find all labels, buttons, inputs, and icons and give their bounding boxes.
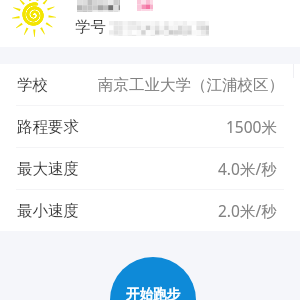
other: App logo	[12, 0, 56, 37]
button[interactable]: 最小速度	[0, 190, 300, 231]
staticText: 1500米	[226, 116, 277, 137]
button[interactable]: 学校	[0, 64, 300, 105]
staticText: 最大速度	[17, 159, 79, 179]
staticText: 4.0米/秒	[218, 158, 277, 179]
staticText: 学校	[17, 75, 48, 95]
staticText: 学号	[75, 17, 106, 37]
button[interactable]: 开始跑步	[110, 257, 196, 300]
staticText: 路程要求	[17, 117, 79, 137]
staticText: 南京工业大学（江浦校区）	[98, 75, 284, 95]
staticText: 2.0米/秒	[218, 200, 277, 221]
button[interactable]: 最大速度	[0, 148, 300, 189]
button[interactable]: 路程要求	[0, 106, 300, 147]
staticText: 最小速度	[17, 201, 79, 221]
staticText: 开始跑步	[126, 286, 180, 300]
